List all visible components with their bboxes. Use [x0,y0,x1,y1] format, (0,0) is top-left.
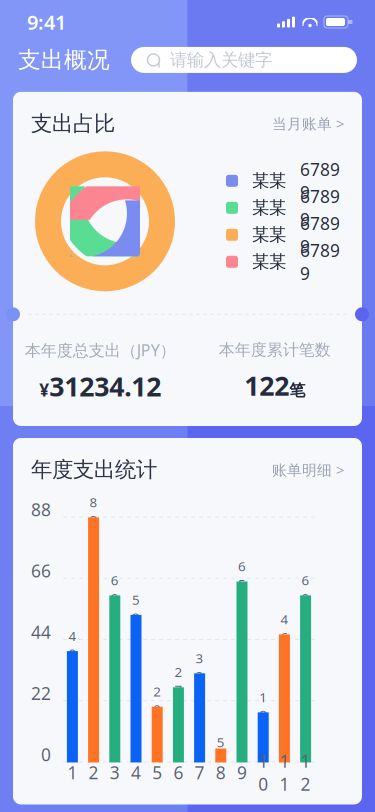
staticText: 12 [301,749,311,795]
staticText: 当月账单 > [272,114,344,133]
staticText: ¥ [39,378,49,401]
staticText: 60 [111,571,119,607]
staticText: 66 [31,559,51,582]
staticText: 请输入关键字 [170,49,272,71]
staticText: 65 [238,557,246,593]
button[interactable]: 请输入关键字 [131,47,357,73]
staticText: 10 [258,749,268,795]
staticText: 某某 [252,197,286,218]
staticText: 60 [302,571,310,607]
staticText: 11 [279,749,289,795]
staticText: 22 [31,682,51,705]
staticText: 本年度累计笔数 [219,340,331,360]
staticText: 9 [237,761,247,784]
staticText: 支出占比 [31,110,115,137]
staticText: 5 [217,733,225,751]
staticText: 年度支出统计 [31,457,157,483]
staticText: 40 [68,627,76,662]
staticText: 账单明细 > [272,460,344,479]
staticText: 67899 [300,185,340,231]
staticText: 2 [89,761,99,784]
staticText: 88 [90,493,98,529]
staticText: 88 [31,498,51,521]
staticText: 44 [31,620,51,643]
staticText: 笔 [289,381,305,400]
staticText: 18 [259,688,267,723]
staticText: 20 [153,683,161,718]
staticText: 某某 [252,251,286,272]
staticText: 4 [131,761,141,784]
staticText: 1 [67,761,77,784]
staticText: 31234.12 [49,369,161,404]
staticText: 某某 [252,170,286,191]
staticText: 支出概况 [18,46,110,74]
staticText: 8 [216,761,226,784]
staticText: 本年度总支出（JPY） [25,339,176,360]
staticText: 67899 [300,239,340,285]
staticText: 122 [244,368,289,403]
staticText: 6 [173,761,183,784]
staticText: 3 [110,761,120,784]
staticText: 某某 [252,224,286,245]
staticText: 5 [152,761,162,784]
staticText: 9:41 [27,9,66,35]
staticText: 27 [174,663,182,698]
staticText: 67899 [300,212,340,258]
staticText: 53 [132,591,140,626]
staticText: 7 [195,761,205,784]
staticText: 0 [41,743,51,766]
button[interactable]: 当月账单 > [262,110,344,137]
button[interactable]: 账单明细 > [262,456,344,483]
staticText: 46 [280,610,288,646]
staticText: 67899 [300,158,340,204]
staticText: 32 [196,649,204,685]
